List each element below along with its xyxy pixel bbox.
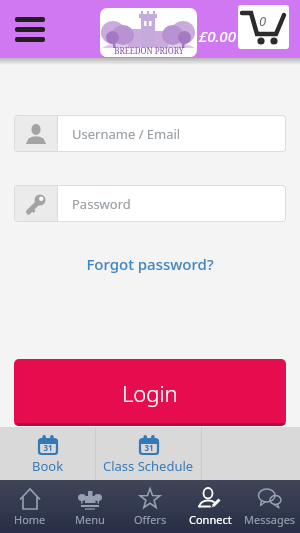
staticText: Menu xyxy=(75,512,105,527)
button[interactable]: Login xyxy=(14,359,286,426)
staticText: 31 xyxy=(144,442,154,453)
staticText: Offers xyxy=(134,512,167,527)
staticText: Messages xyxy=(244,512,296,527)
button[interactable]: Messages xyxy=(240,480,300,533)
button[interactable]: Connect xyxy=(180,480,240,533)
button[interactable]: 31 xyxy=(96,427,201,480)
staticText: Book xyxy=(32,457,64,475)
button[interactable]: Menu xyxy=(60,480,120,533)
staticText: Connect xyxy=(189,512,232,527)
button[interactable]: 0 xyxy=(238,5,289,49)
button[interactable]: Home xyxy=(0,480,60,533)
button[interactable]: 31 xyxy=(0,427,95,480)
staticText: BREEDON PRIORY xyxy=(114,45,184,56)
button[interactable]: Offers xyxy=(120,480,180,533)
button[interactable]: Password xyxy=(15,186,285,221)
button[interactable] xyxy=(15,17,45,42)
staticText: Home xyxy=(14,512,46,527)
staticText: 31 xyxy=(43,442,53,453)
staticText: Login xyxy=(122,378,178,408)
staticText: £0.00 xyxy=(199,26,236,46)
button[interactable]: Username / Email xyxy=(15,116,285,151)
button[interactable]: Forgot password? xyxy=(86,254,214,274)
staticText: Username / Email xyxy=(72,125,181,143)
staticText: 0 xyxy=(259,12,267,30)
staticText: Class Schedule xyxy=(103,457,194,475)
staticText: Password xyxy=(72,195,131,213)
